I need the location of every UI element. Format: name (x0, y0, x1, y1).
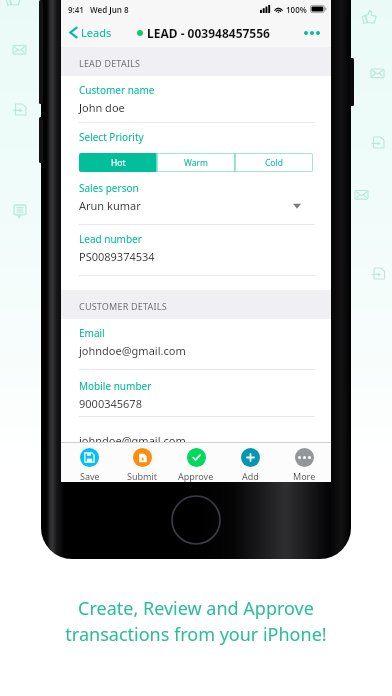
staticText: transactions from your iPhone! (65, 622, 327, 647)
staticText: 9:41 (68, 4, 84, 15)
staticText: More (293, 470, 316, 482)
button[interactable]: Warm (157, 153, 235, 172)
staticText: Lead number (79, 232, 142, 246)
staticText: Email (79, 326, 105, 340)
button[interactable]: Leads (68, 25, 113, 40)
staticText: Submit (127, 470, 158, 482)
button[interactable]: Cold (235, 153, 313, 172)
staticText: Sales person (79, 181, 139, 195)
staticText: CUSTOMER DETAILS (79, 300, 167, 312)
staticText: Wed Jun 8 (90, 4, 129, 15)
staticText: Approve (178, 470, 214, 482)
staticText: Customer name (79, 83, 155, 97)
staticText: 100% (286, 4, 307, 15)
staticText: Warm (184, 157, 208, 169)
button[interactable]: Save (63, 443, 116, 482)
staticText: Arun kumar (79, 198, 141, 213)
staticText: Cold (265, 157, 283, 169)
button[interactable]: More options (302, 29, 322, 37)
button[interactable]: Add (223, 443, 277, 482)
button[interactable]: More (277, 443, 331, 482)
staticText: John doe (79, 100, 125, 115)
staticText: LEAD - 003948457556 (147, 25, 270, 41)
staticText: Select Priority (79, 130, 144, 144)
button[interactable]: Submit (116, 443, 169, 482)
button[interactable]: Approve (169, 443, 223, 482)
staticText: Hot (111, 157, 126, 169)
staticText: Leads (81, 25, 112, 40)
staticText: Mobile number (79, 379, 152, 393)
staticText: johndoe@gmail.com (79, 433, 186, 442)
staticText: 9000345678 (79, 396, 142, 411)
staticText: Create, Review and Approve (78, 596, 314, 621)
staticText: Save (80, 470, 100, 482)
staticText: PS0089374534 (79, 249, 155, 264)
button[interactable]: Hot (79, 153, 157, 172)
staticText: Add (242, 470, 259, 482)
staticText: johndoe@gmail.com (79, 343, 186, 358)
staticText: LEAD DETAILS (79, 57, 141, 69)
